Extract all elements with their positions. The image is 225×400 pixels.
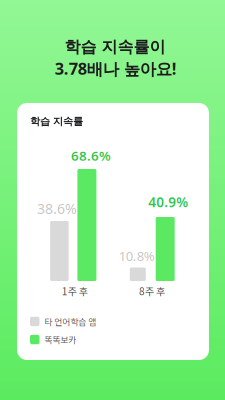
staticText: 3.78배나 높아요! <box>55 57 177 80</box>
staticText: 8주 후 <box>139 284 165 298</box>
staticText: 40.9% <box>148 193 188 211</box>
staticText: 학습 지속률 <box>30 115 83 128</box>
staticText: 똑똑보카 <box>44 333 76 346</box>
staticText: 1주 후 <box>62 284 88 298</box>
staticText: 타 언어학습 앱 <box>44 315 96 328</box>
staticText: 68.6% <box>71 146 111 165</box>
staticText: 10.8% <box>119 247 155 265</box>
staticText: 학습 지속률이 <box>64 37 165 57</box>
staticText: 38.6% <box>37 199 77 218</box>
